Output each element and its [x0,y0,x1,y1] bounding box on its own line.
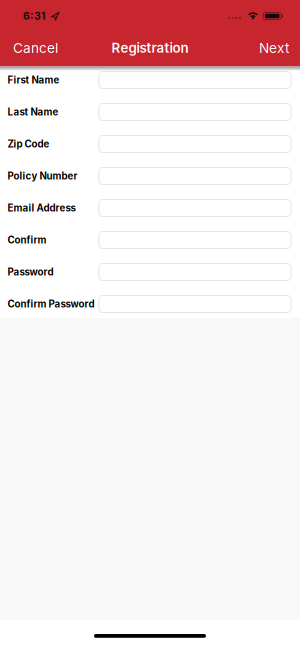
staticText: Confirm Password [7,298,94,310]
staticText: Policy Number [7,170,77,182]
staticText: Registration [111,40,188,56]
staticText: Confirm [7,234,46,246]
staticText: 6:31 [23,10,46,22]
staticText: Cancel [13,40,58,56]
staticText: Next [259,40,289,56]
staticText: Zip Code [7,138,49,150]
staticText: Email Address [7,202,75,214]
button[interactable]: Cancel [13,40,58,56]
button[interactable]: Next [259,40,289,56]
staticText: First Name [7,74,59,86]
staticText: Password [7,266,53,278]
staticText: Last Name [7,106,58,118]
